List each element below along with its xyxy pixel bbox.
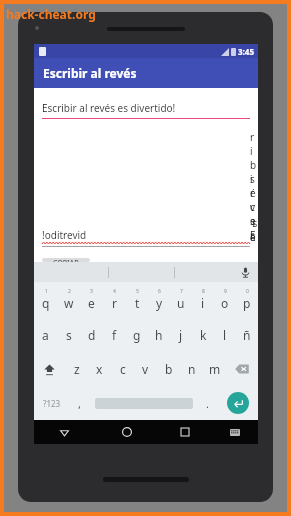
- button[interactable]: Escribir al revés es divertido!: [42, 101, 250, 119]
- staticText: q: [42, 295, 50, 311]
- button[interactable]: d: [80, 317, 103, 352]
- button[interactable]: !oditrevid: [42, 130, 250, 247]
- staticText: t: [135, 295, 140, 311]
- button[interactable]: n: [180, 352, 203, 386]
- staticText: r: [112, 295, 117, 311]
- button[interactable]: 7: [170, 282, 192, 317]
- button[interactable]: x: [88, 352, 111, 386]
- button[interactable]: 0: [236, 282, 258, 317]
- staticText: k: [200, 327, 207, 343]
- staticText: !oditrevid: [42, 228, 87, 242]
- staticText: y: [156, 295, 163, 311]
- staticText: ñ: [243, 327, 251, 343]
- staticText: i: [201, 295, 205, 311]
- staticText: l: [223, 327, 227, 343]
- staticText: 3:45: [238, 46, 254, 57]
- button[interactable]: Voice input: [238, 265, 252, 279]
- button[interactable]: k: [192, 317, 214, 352]
- button[interactable]: 3: [80, 282, 103, 317]
- staticText: 3: [90, 288, 93, 295]
- staticText: b: [165, 361, 173, 377]
- button[interactable]: z: [65, 352, 88, 386]
- staticText: j: [179, 327, 183, 343]
- staticText: Escribir al revés es divertido!: [42, 101, 176, 115]
- staticText: u: [177, 295, 185, 311]
- staticText: h: [155, 327, 163, 343]
- staticText: n: [188, 361, 196, 377]
- button[interactable]: ñ: [236, 317, 258, 352]
- staticText: 2: [68, 288, 71, 295]
- staticText: v: [142, 361, 149, 377]
- button[interactable]: 6: [148, 282, 170, 317]
- staticText: 0: [246, 288, 249, 295]
- staticText: COPIAR: [53, 258, 79, 262]
- staticText: 8: [202, 288, 205, 295]
- staticText: 1: [45, 288, 48, 295]
- staticText: s: [66, 327, 72, 343]
- staticText: ?123: [43, 398, 61, 409]
- button[interactable]: Switch keyboard: [212, 420, 258, 444]
- staticText: Escribir al revés: [43, 65, 137, 81]
- button[interactable]: s: [57, 317, 80, 352]
- button[interactable]: g: [126, 317, 148, 352]
- staticText: .: [206, 396, 209, 411]
- staticText: d: [88, 327, 96, 343]
- button[interactable]: .: [197, 386, 218, 420]
- staticText: p: [243, 295, 251, 311]
- staticText: hack-cheat.org: [6, 6, 96, 22]
- staticText: a: [42, 327, 49, 343]
- button[interactable]: [90, 386, 197, 420]
- button[interactable]: v: [134, 352, 157, 386]
- staticText: o: [221, 295, 229, 311]
- staticText: m: [209, 361, 221, 377]
- staticText: 4: [113, 288, 116, 295]
- button[interactable]: b: [157, 352, 180, 386]
- button[interactable]: l: [214, 317, 236, 352]
- button[interactable]: 4: [103, 282, 126, 317]
- button[interactable]: Home: [95, 420, 158, 444]
- staticText: x: [96, 361, 103, 377]
- button[interactable]: 5: [126, 282, 148, 317]
- staticText: z: [74, 361, 80, 377]
- button[interactable]: 1: [34, 282, 57, 317]
- button[interactable]: Enter: [218, 386, 258, 420]
- button[interactable]: ?123: [34, 386, 69, 420]
- button[interactable]: m: [203, 352, 226, 386]
- staticText: e: [88, 295, 95, 311]
- button[interactable]: 8: [192, 282, 214, 317]
- staticText: ,: [78, 396, 81, 411]
- staticText: w: [64, 295, 74, 311]
- staticText: c: [120, 361, 126, 377]
- button[interactable]: h: [148, 317, 170, 352]
- button[interactable]: c: [111, 352, 134, 386]
- button[interactable]: 2: [57, 282, 80, 317]
- button[interactable]: Back: [34, 420, 95, 444]
- staticText: 7: [180, 288, 183, 295]
- staticText: f: [112, 327, 117, 343]
- staticText: g: [133, 327, 141, 343]
- button[interactable]: f: [103, 317, 126, 352]
- button[interactable]: COPIAR: [42, 258, 90, 262]
- button[interactable]: 9: [214, 282, 236, 317]
- button[interactable]: Backspace: [226, 352, 258, 386]
- button[interactable]: Recent apps: [158, 420, 212, 444]
- staticText: 5: [136, 288, 139, 295]
- button[interactable]: ,: [69, 386, 90, 420]
- button[interactable]: a: [34, 317, 57, 352]
- button[interactable]: j: [170, 317, 192, 352]
- staticText: 9: [224, 288, 227, 295]
- staticText: 6: [158, 288, 161, 295]
- button[interactable]: Shift: [34, 352, 65, 386]
